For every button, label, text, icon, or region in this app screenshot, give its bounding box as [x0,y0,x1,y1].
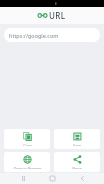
staticText: Copy [23,143,32,146]
staticText: Save [73,143,81,146]
button[interactable]: Recents [16,173,30,184]
button[interactable]: https://google.com [4,28,100,42]
button[interactable]: Save [54,129,100,149]
button[interactable]: Open in Browser [4,152,50,172]
staticText: URL [49,10,66,21]
staticText: https://google.com [9,32,59,39]
button[interactable]: Share [54,152,100,172]
button[interactable]: Copy [4,129,50,149]
staticText: Open in Browser [13,166,42,169]
staticText: Share [72,166,82,169]
button[interactable]: Back [75,173,89,184]
button[interactable]: Home [45,173,59,184]
